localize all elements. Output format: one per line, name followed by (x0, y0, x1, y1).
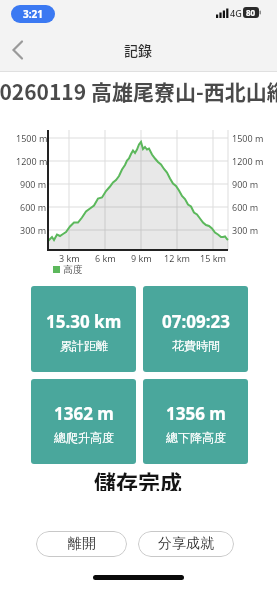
staticText: 總爬升高度 (54, 430, 114, 445)
staticText: 80 (246, 7, 256, 18)
button[interactable]: 15.30 km (31, 286, 136, 372)
staticText: 離開 (68, 535, 96, 553)
staticText: 高度 (63, 263, 83, 275)
button[interactable]: 離開 (36, 531, 127, 557)
staticText: 1356 m (166, 402, 226, 425)
staticText: 1362 m (54, 402, 114, 425)
button[interactable]: 1362 m (31, 379, 136, 464)
staticText: 07:09:23 (162, 310, 230, 333)
staticText: 12 km (164, 252, 190, 264)
button[interactable]: 07:09:23 (143, 286, 248, 372)
staticText: 600 m (20, 201, 47, 213)
staticText: 6 km (95, 252, 116, 264)
staticText: 9 km (131, 252, 152, 264)
staticText: 總下降高度 (166, 430, 226, 445)
staticText: 花費時間 (172, 338, 220, 353)
staticText: 900 m (20, 178, 47, 190)
staticText: 300 m (20, 224, 47, 236)
staticText: 900 m (232, 178, 259, 190)
staticText: 15.30 km (46, 310, 122, 333)
staticText: 3:21 (23, 7, 43, 21)
button[interactable]: 1356 m (143, 379, 248, 464)
staticText: 1200 m (16, 155, 47, 167)
button[interactable]: 分享成就 (138, 531, 234, 557)
staticText: 儲存完成 (94, 465, 183, 491)
staticText: 1500 m (16, 132, 47, 144)
staticText: 1200 m (232, 155, 264, 167)
staticText: 分享成就 (158, 535, 214, 553)
staticText: 記錄 (124, 40, 152, 58)
staticText: 600 m (232, 201, 259, 213)
staticText: 累計距離 (60, 338, 108, 353)
button[interactable] (10, 40, 26, 60)
staticText: 15 km (200, 252, 226, 264)
staticText: 1500 m (232, 132, 264, 144)
staticText: 300 m (232, 224, 259, 236)
staticText: 3 km (59, 252, 80, 264)
button[interactable]: 3:21 (11, 5, 55, 23)
staticText: 20260119 高雄尾寮山-西北山縱走 (0, 76, 277, 103)
staticText: 4G (230, 7, 242, 19)
